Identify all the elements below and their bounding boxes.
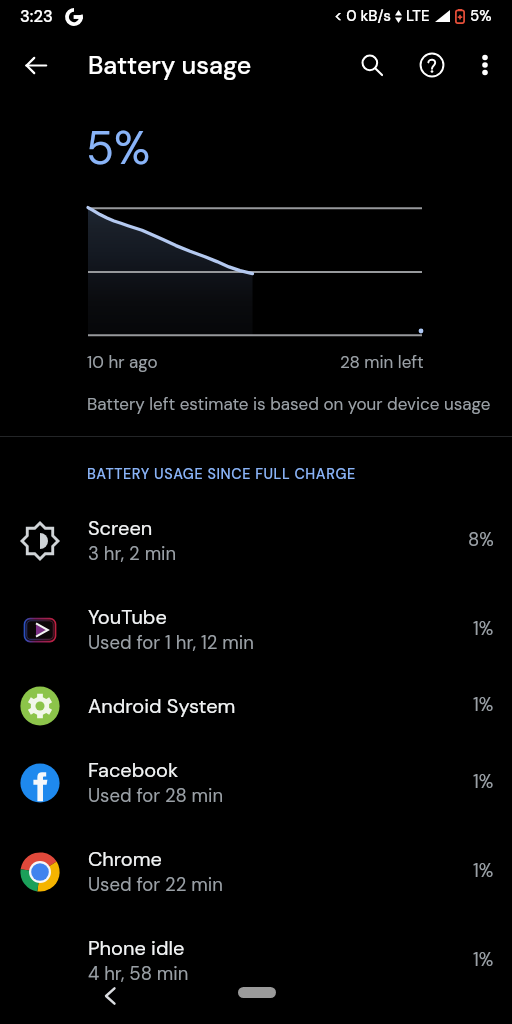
button[interactable]: YouTube [0, 585, 512, 674]
staticText: 8% [468, 528, 494, 552]
staticText: 1% [473, 770, 494, 794]
staticText: Android System [88, 693, 236, 719]
staticText: 3:23 [20, 6, 53, 27]
button[interactable]: Android System [0, 674, 512, 738]
staticText: 4 hr, 58 min [88, 962, 189, 986]
staticText: < 0 kB/s [334, 6, 391, 26]
staticText: BATTERY USAGE SINCE FULL CHARGE [87, 465, 356, 484]
button[interactable]: Navigate up [12, 41, 60, 89]
staticText: 1% [473, 859, 494, 883]
staticText: 1% [473, 948, 494, 972]
staticText: Facebook [88, 757, 179, 783]
staticText: Used for 28 min [88, 784, 224, 808]
staticText: 28 min left [340, 351, 424, 373]
button[interactable]: Search [348, 41, 396, 89]
staticText: Screen [88, 515, 153, 541]
button[interactable]: Screen [0, 496, 512, 585]
staticText: Used for 1 hr, 12 min [88, 631, 254, 655]
staticText: Battery left estimate is based on your d… [87, 393, 491, 415]
button[interactable]: More options [461, 41, 509, 89]
button[interactable]: Back [92, 978, 128, 1014]
staticText: 10 hr ago [87, 351, 158, 373]
staticText: LTE [406, 6, 430, 26]
staticText: Used for 22 min [88, 873, 223, 897]
staticText: Battery usage [88, 49, 252, 82]
staticText: 3 hr, 2 min [88, 542, 177, 566]
button[interactable]: Help [408, 41, 456, 89]
staticText: YouTube [88, 604, 167, 630]
staticText: 5% [470, 6, 492, 26]
staticText: 1% [473, 693, 494, 717]
staticText: Chrome [88, 846, 162, 872]
button[interactable]: Chrome [0, 827, 512, 916]
staticText: Phone idle [88, 935, 185, 961]
button[interactable]: Facebook [0, 738, 512, 827]
button[interactable]: Phone idle [0, 916, 512, 1005]
staticText: 1% [473, 617, 494, 641]
staticText: 5% [86, 118, 151, 178]
button[interactable]: Home [238, 987, 276, 998]
